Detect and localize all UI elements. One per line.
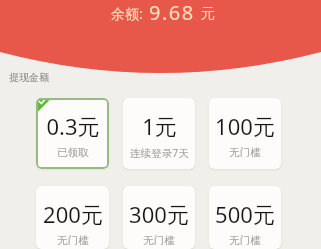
staticText: 无门槛 (229, 234, 261, 247)
staticText: 1元 (142, 111, 177, 141)
staticText: 无门槛 (57, 234, 89, 247)
staticText: 100元 (215, 111, 275, 141)
staticText: 连续登录7天 (130, 146, 189, 160)
staticText: 500元 (215, 199, 275, 229)
button[interactable]: 200元 (36, 186, 109, 249)
button[interactable]: 0.3元 (36, 98, 109, 169)
staticText: 元 (201, 5, 215, 23)
staticText: 已领取 (57, 146, 89, 159)
staticText: 余额: (111, 4, 143, 23)
staticText: 0.3元 (46, 111, 100, 141)
staticText: 提现金额 (9, 71, 49, 84)
staticText: 200元 (43, 199, 103, 229)
button[interactable]: 1元 (123, 98, 195, 169)
staticText: 9.68 (149, 0, 195, 26)
button[interactable]: 500元 (209, 186, 281, 249)
staticText: 无门槛 (143, 234, 175, 247)
button[interactable]: 100元 (209, 98, 281, 169)
staticText: 无门槛 (229, 146, 261, 159)
button[interactable]: 300元 (123, 186, 195, 249)
staticText: 300元 (129, 199, 189, 229)
